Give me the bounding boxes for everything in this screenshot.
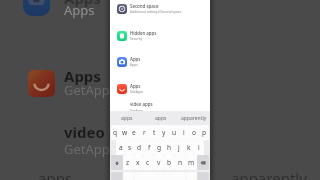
staticText: b (167, 158, 172, 167)
button[interactable]: t (149, 125, 159, 140)
staticText: Second space (130, 3, 159, 9)
button[interactable]: k (184, 140, 194, 155)
staticText: video apps (130, 101, 153, 107)
staticText: t (153, 128, 156, 137)
staticText: k (187, 143, 191, 152)
button[interactable]: Hidden apps (110, 23, 210, 50)
button[interactable]: b (164, 155, 175, 170)
staticText: apps (38, 168, 73, 180)
staticText: i (183, 128, 185, 137)
button[interactable]: Backspace (197, 155, 209, 170)
staticText: c (146, 158, 150, 167)
staticText: p (202, 128, 207, 137)
staticText: video a (64, 122, 118, 142)
button[interactable]: y (159, 125, 169, 140)
staticText: d (137, 143, 142, 152)
button[interactable]: o (189, 125, 199, 140)
staticText: Apps (130, 56, 141, 62)
staticText: y (162, 128, 166, 137)
staticText: GetApps (130, 108, 144, 112)
staticText: apps (155, 115, 167, 122)
staticText: z (126, 158, 130, 167)
button[interactable]: video apps (110, 99, 210, 111)
staticText: Apps (64, 66, 101, 86)
staticText: o (192, 128, 196, 137)
staticText: a (119, 143, 123, 152)
staticText: l (198, 143, 200, 152)
button[interactable]: m (186, 155, 197, 170)
button[interactable]: Apps (110, 49, 210, 76)
button[interactable]: apps (144, 111, 177, 125)
button[interactable]: x (133, 155, 143, 170)
button[interactable]: apps (110, 111, 144, 125)
button[interactable]: g (154, 140, 164, 155)
button[interactable]: n (175, 155, 186, 170)
staticText: apparently (231, 168, 307, 180)
staticText: q (113, 128, 118, 137)
button[interactable]: Apps (110, 76, 210, 103)
staticText: x (136, 158, 140, 167)
button[interactable]: a (116, 140, 125, 155)
button[interactable]: e (129, 125, 139, 140)
staticText: s (128, 143, 132, 152)
staticText: Security (130, 36, 143, 40)
button[interactable]: l (194, 140, 204, 155)
button[interactable]: s (125, 140, 134, 155)
button[interactable]: u (169, 125, 179, 140)
staticText: Apps (64, 0, 101, 8)
button[interactable]: j (174, 140, 184, 155)
staticText: Additional settings/Second space (130, 9, 182, 13)
button[interactable]: i (179, 125, 189, 140)
button[interactable]: Second space (110, 0, 210, 23)
staticText: h (167, 143, 172, 152)
button[interactable]: v (153, 155, 164, 170)
staticText: r (143, 128, 146, 137)
button[interactable]: d (134, 140, 144, 155)
staticText: m (188, 158, 195, 167)
button[interactable]: p (199, 125, 209, 140)
button[interactable]: apparently (177, 111, 210, 125)
staticText: f (148, 143, 151, 152)
button[interactable]: c (143, 155, 153, 170)
staticText: GetApps (64, 81, 117, 99)
button[interactable]: f (144, 140, 154, 155)
button[interactable]: Shift (111, 155, 123, 170)
button[interactable]: q (111, 125, 120, 140)
staticText: Apps (64, 1, 95, 19)
button[interactable]: z (123, 155, 133, 170)
staticText: v (157, 158, 161, 167)
button[interactable]: h (164, 140, 174, 155)
staticText: e (132, 128, 136, 137)
staticText: Apps (130, 62, 138, 66)
staticText: apps (121, 115, 133, 122)
staticText: g (157, 143, 162, 152)
staticText: u (172, 128, 177, 137)
staticText: Hidden apps (130, 30, 157, 36)
staticText: w (122, 128, 128, 137)
button[interactable]: r (139, 125, 149, 140)
staticText: GetApps (64, 140, 117, 158)
staticText: n (178, 158, 183, 167)
button[interactable]: w (120, 125, 129, 140)
staticText: Apps (130, 83, 141, 89)
staticText: j (178, 143, 180, 152)
staticText: GetApps (130, 89, 144, 93)
staticText: apparently (181, 115, 207, 122)
